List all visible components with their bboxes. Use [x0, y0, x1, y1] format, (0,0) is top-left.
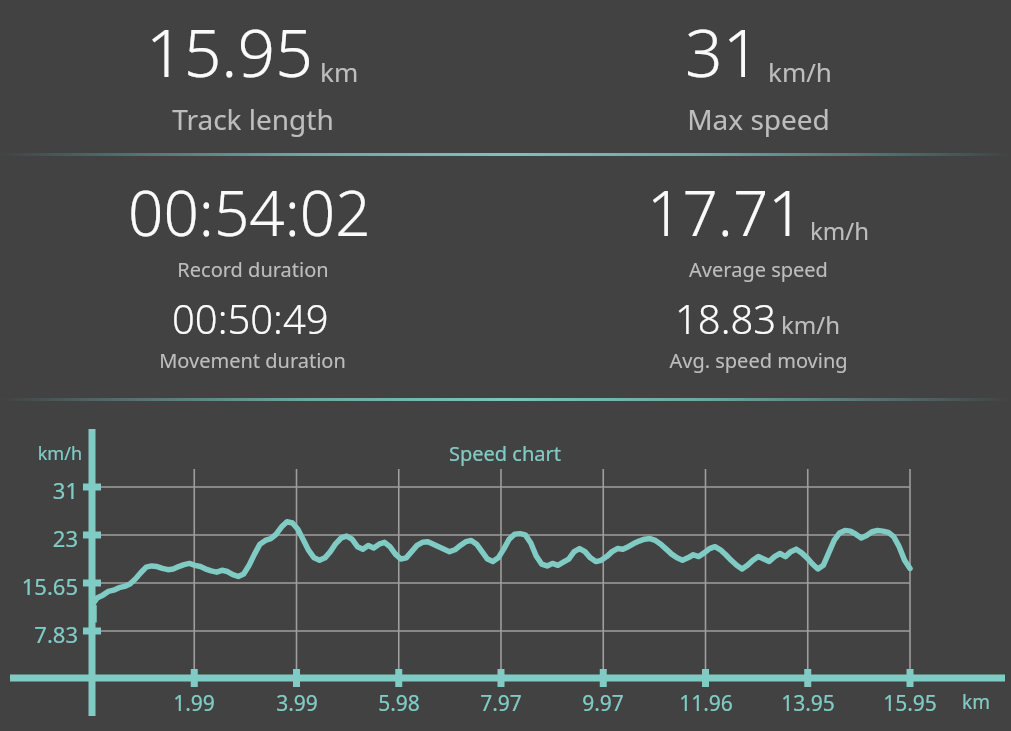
staticText: 3.99 [267, 689, 327, 718]
staticText: 7.83 [0, 619, 78, 649]
staticText: 31 [0, 475, 78, 505]
button[interactable]: 31 [505, 0, 1011, 153]
staticText: 18.83 [675, 291, 777, 345]
staticText: km/h [781, 308, 841, 341]
staticText: 9.97 [573, 689, 633, 718]
staticText: 15.95 [146, 6, 313, 96]
staticText: km [962, 689, 990, 715]
button[interactable]: 17.71 [505, 156, 1011, 398]
staticText: Average speed [689, 256, 828, 283]
staticText: Max speed [687, 100, 830, 138]
staticText: 31 [685, 6, 761, 96]
button[interactable]: 15.95 [0, 0, 505, 153]
staticText: Record duration [177, 256, 329, 283]
button[interactable]: 00:54:02 [0, 156, 505, 398]
staticText: 00:54:02 [128, 170, 371, 254]
staticText: 15.95 [880, 689, 940, 718]
staticText: km/h [0, 441, 82, 466]
staticText: 11.96 [676, 689, 736, 718]
staticText: 13.95 [778, 689, 838, 718]
staticText: 23 [0, 523, 78, 553]
staticText: 15.65 [0, 571, 78, 601]
staticText: km [320, 54, 359, 89]
staticText: km/h [768, 54, 832, 89]
staticText: Track length [172, 100, 334, 138]
button[interactable]: Speed chart [0, 401, 1011, 731]
staticText: 7.97 [471, 689, 531, 718]
staticText: Avg. speed moving [669, 347, 848, 374]
staticText: Speed chart [449, 440, 561, 467]
staticText: 17.71 [647, 170, 804, 254]
staticText: 1.99 [164, 689, 224, 718]
staticText: km/h [810, 214, 870, 247]
staticText: 5.98 [369, 689, 429, 718]
staticText: Movement duration [159, 347, 346, 374]
staticText: 00:50:49 [172, 291, 329, 345]
